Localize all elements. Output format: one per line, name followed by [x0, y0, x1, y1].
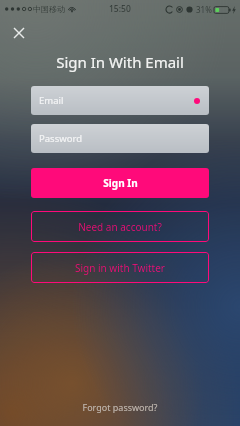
staticText: Sign In [103, 176, 138, 190]
button[interactable]: Sign In [31, 168, 209, 198]
button[interactable]: Password [31, 124, 209, 153]
staticText: 15:50 [109, 3, 131, 15]
button[interactable]: Need an account? [31, 211, 209, 242]
staticText: Sign in with Twitter [75, 261, 165, 275]
staticText: Sign In With Email [0, 52, 240, 72]
button[interactable]: Sign in with Twitter [31, 252, 209, 283]
staticText: Need an account? [78, 220, 162, 234]
button[interactable]: Forgot password? [0, 393, 240, 421]
staticText: 31% [196, 4, 212, 15]
staticText: 中国移动 [33, 4, 65, 14]
staticText: Email [39, 94, 64, 107]
staticText: Password [39, 132, 82, 145]
staticText: Forgot password? [82, 401, 158, 413]
button[interactable]: Close [8, 22, 30, 44]
button[interactable]: Email [31, 86, 209, 115]
